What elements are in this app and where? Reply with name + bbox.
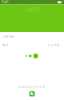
staticText: 小程序: [24, 6, 39, 13]
staticText: 商户: [2, 43, 8, 47]
staticText: 9:41: [2, 0, 9, 4]
staticText: 订单详情: [2, 35, 14, 38]
staticText: 由微信提供技术支持: [18, 85, 45, 89]
staticText: 正在加载…: [47, 43, 61, 47]
